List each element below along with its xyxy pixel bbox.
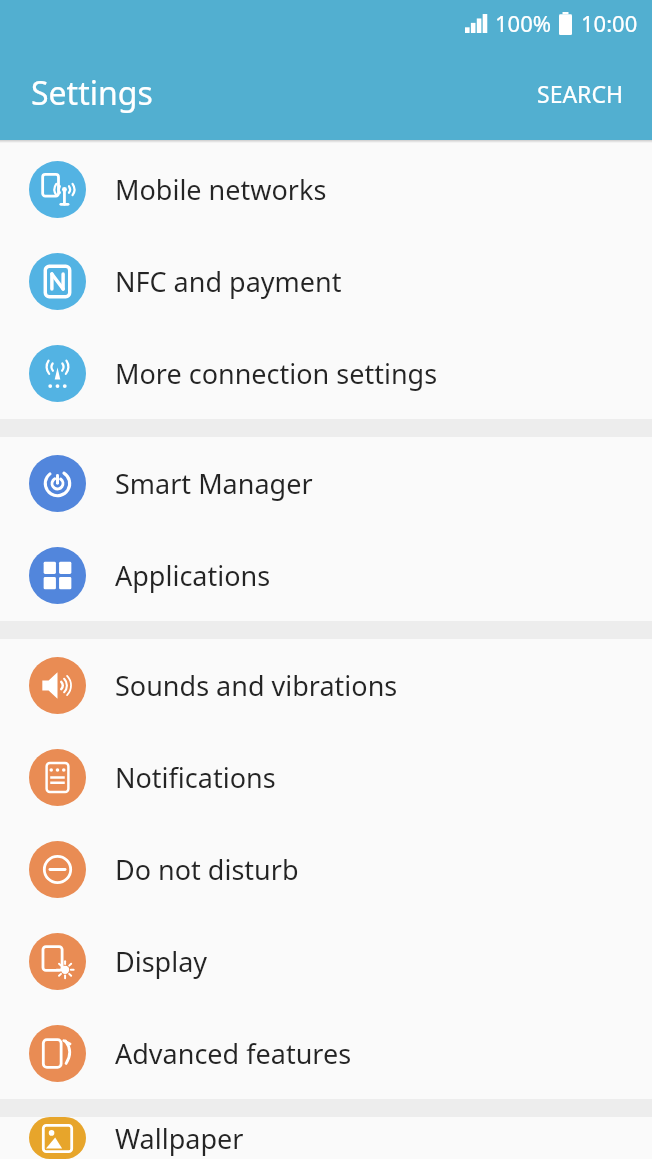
other: Notifications (29, 749, 86, 806)
button[interactable]: Do not disturb (0, 823, 652, 915)
button[interactable]: Advanced features (0, 1007, 652, 1099)
button[interactable]: SEARCH (532, 71, 628, 116)
other: Wallpaper (29, 1117, 86, 1159)
staticText: Mobile networks (115, 171, 327, 208)
staticText: SEARCH (537, 78, 623, 109)
staticText: Applications (115, 557, 271, 594)
other: Applications (29, 547, 86, 604)
staticText: Display (115, 943, 208, 980)
other: More connection settings (29, 345, 86, 402)
other: Advanced features (29, 1025, 86, 1082)
staticText: Notifications (115, 759, 276, 796)
button[interactable]: Sounds and vibrations (0, 639, 652, 731)
button[interactable]: Notifications (0, 731, 652, 823)
other: Sounds and vibrations (29, 657, 86, 714)
staticText: Settings (31, 71, 153, 115)
other: Mobile networks (29, 161, 86, 218)
button[interactable]: More connection settings (0, 327, 652, 419)
staticText: Wallpaper (115, 1120, 244, 1157)
other: NFC and payment (29, 253, 86, 310)
other: Display (29, 933, 86, 990)
staticText: Do not disturb (115, 851, 299, 888)
staticText: More connection settings (115, 355, 438, 392)
other: Smart Manager (29, 455, 86, 512)
button[interactable]: Display (0, 915, 652, 1007)
button[interactable]: Mobile networks (0, 143, 652, 235)
staticText: Sounds and vibrations (115, 667, 398, 704)
staticText: Advanced features (115, 1035, 352, 1072)
button[interactable]: Applications (0, 529, 652, 621)
other: Do not disturb (29, 841, 86, 898)
button[interactable]: Smart Manager (0, 437, 652, 529)
staticText: Smart Manager (115, 465, 313, 502)
staticText: 10:00 (581, 8, 638, 38)
button[interactable]: Wallpaper (0, 1117, 652, 1159)
button[interactable]: NFC and payment (0, 235, 652, 327)
staticText: 100% (495, 8, 552, 38)
staticText: NFC and payment (115, 263, 342, 300)
